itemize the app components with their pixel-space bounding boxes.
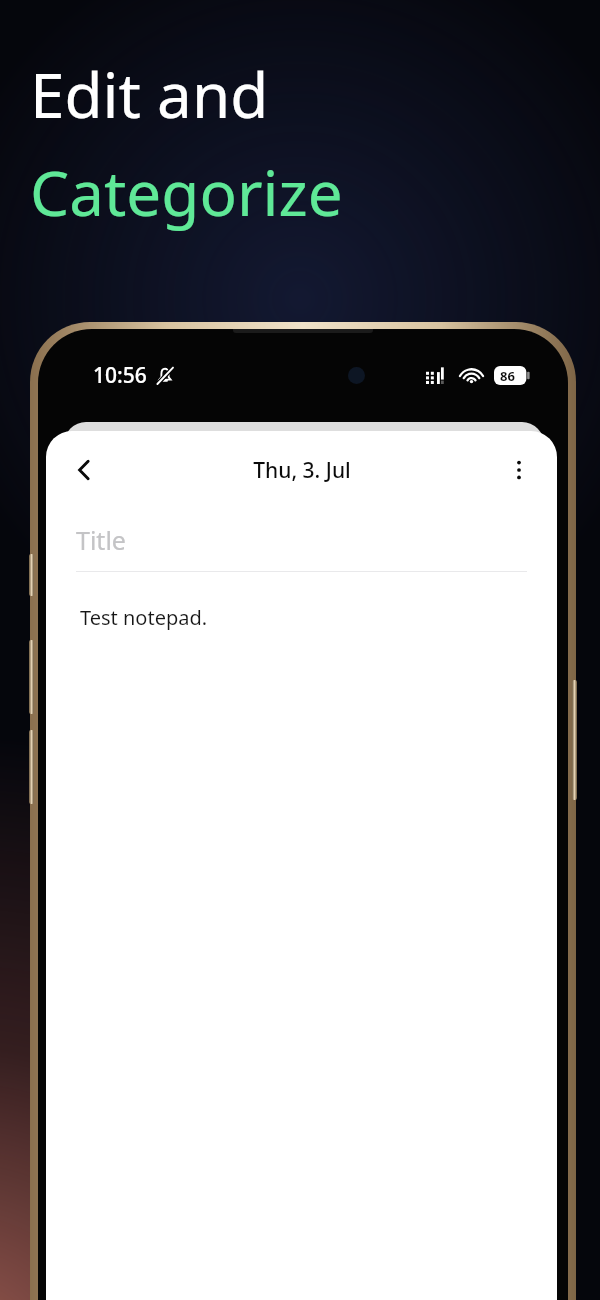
staticText: Test notepad. — [80, 604, 208, 631]
staticText: Edit and — [30, 52, 269, 136]
staticText: Categorize — [30, 150, 343, 234]
button[interactable]: Title — [46, 509, 557, 571]
staticText: Thu, 3. Jul — [253, 456, 351, 485]
staticText: 86 — [500, 367, 515, 385]
staticText: 10:56 — [93, 361, 147, 390]
button[interactable]: Test notepad. — [46, 596, 557, 1300]
staticText: Title — [76, 523, 126, 557]
button[interactable]: Back — [60, 446, 108, 494]
button[interactable]: More options — [495, 446, 543, 494]
